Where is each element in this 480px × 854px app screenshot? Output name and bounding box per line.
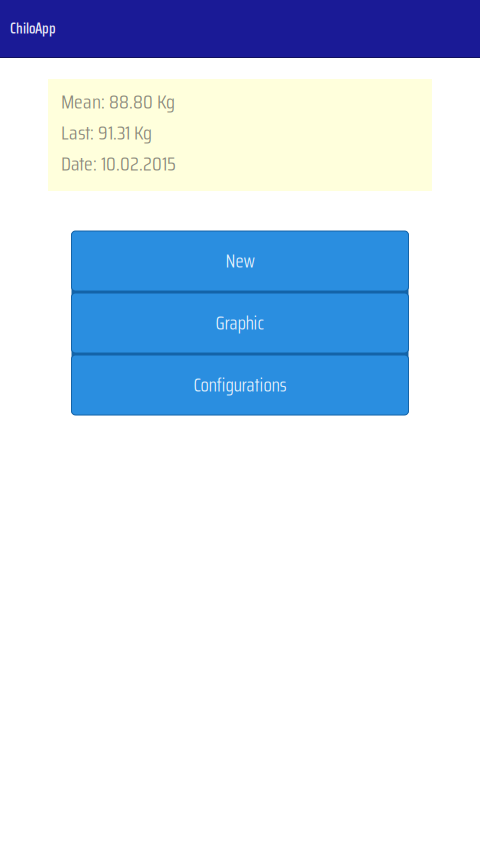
staticText: Configurations (193, 370, 286, 400)
button[interactable]: New (71, 231, 408, 291)
button[interactable]: ChiloApp (0, 0, 480, 57)
staticText: Date: 10.02.2015 (61, 148, 176, 179)
staticText: ChiloApp (10, 17, 56, 40)
staticText: Mean: 88.80 Kg (61, 86, 175, 117)
staticText: New (225, 246, 254, 276)
staticText: Graphic (215, 308, 264, 338)
button[interactable]: Graphic (71, 293, 408, 353)
button[interactable]: Configurations (71, 355, 408, 415)
staticText: Last: 91.31 Kg (61, 117, 152, 148)
